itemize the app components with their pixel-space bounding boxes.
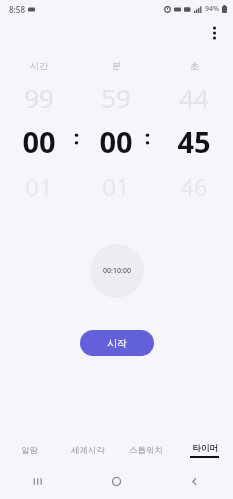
staticText: 시작 <box>107 337 127 350</box>
staticText: 분 <box>112 60 121 71</box>
staticText: 세계시각 <box>71 445 105 456</box>
button[interactable]: 스톱워치 <box>117 437 175 463</box>
staticText: 99 <box>24 80 54 110</box>
button[interactable]: 세계시각 <box>59 437 117 463</box>
button[interactable]: Recents <box>0 468 77 494</box>
staticText: 8:58 <box>9 4 25 15</box>
button[interactable]: 타이머 <box>175 437 233 463</box>
button[interactable]: 00:10:00 <box>90 244 144 298</box>
staticText: 00 <box>99 122 133 156</box>
staticText: 46 <box>180 170 208 198</box>
button[interactable]: Home <box>77 468 155 494</box>
staticText: 45 <box>177 122 211 156</box>
button[interactable]: 00 <box>77 122 155 156</box>
staticText: 알람 <box>21 445 38 456</box>
staticText: 초 <box>190 60 199 71</box>
button[interactable]: More options <box>201 20 227 46</box>
staticText: 타이머 <box>192 443 218 454</box>
staticText: 44 <box>179 80 209 110</box>
button[interactable]: 45 <box>155 122 233 156</box>
staticText: 01 <box>25 170 53 198</box>
button[interactable]: 알람 <box>0 437 59 463</box>
button[interactable]: Back <box>155 468 233 494</box>
button[interactable]: 시작 <box>80 330 154 356</box>
staticText: 94% <box>205 4 219 14</box>
staticText: 00 <box>22 122 56 156</box>
staticText: 00:10:00 <box>103 266 131 276</box>
staticText: 스톱워치 <box>129 445 163 456</box>
staticText: 59 <box>101 80 131 110</box>
staticText: 시간 <box>30 60 48 71</box>
staticText: 01 <box>102 170 130 198</box>
button[interactable]: 00 <box>0 122 77 156</box>
